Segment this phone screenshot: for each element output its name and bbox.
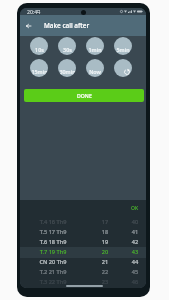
staticText: 30s: [63, 46, 72, 53]
staticText: T.3 22 Th9: [23, 278, 83, 286]
staticText: 23: [95, 278, 115, 286]
staticText: 42: [125, 238, 145, 246]
button[interactable]: T.5 17 Th9: [20, 227, 146, 237]
staticText: Make call after: [44, 21, 90, 30]
button[interactable]: T.4 16 Th9: [20, 217, 146, 227]
staticText: 15min: [31, 68, 48, 75]
button[interactable]: 1min: [86, 37, 104, 55]
staticText: 43: [125, 248, 145, 256]
staticText: 5min: [116, 46, 130, 53]
button[interactable]: T.2 21 Th9: [20, 267, 146, 277]
staticText: T.5 17 Th9: [23, 228, 83, 236]
staticText: 40: [125, 218, 145, 226]
staticText: 17: [95, 218, 115, 226]
staticText: 46: [125, 278, 145, 286]
button[interactable]: 10s: [30, 37, 48, 55]
staticText: 45: [125, 268, 145, 276]
button[interactable]: 5min: [114, 37, 132, 55]
staticText: 1min: [88, 46, 102, 53]
button[interactable]: OK: [127, 203, 143, 213]
staticText: 20:44: [27, 8, 41, 15]
staticText: T.7 19 Th9: [23, 248, 83, 256]
staticText: 22: [95, 268, 115, 276]
button[interactable]: Custom time: [114, 59, 132, 77]
staticText: T.6 18 Th9: [23, 238, 83, 246]
button[interactable]: T.6 18 Th9: [20, 237, 146, 247]
staticText: 20: [95, 248, 115, 256]
button[interactable]: CN 20 Th9: [20, 257, 146, 267]
staticText: Now: [89, 68, 101, 75]
button[interactable]: Back: [23, 20, 34, 31]
staticText: 30min: [59, 68, 76, 75]
staticText: 21: [95, 258, 115, 266]
staticText: 18: [95, 228, 115, 236]
staticText: 19: [95, 238, 115, 246]
staticText: OK: [131, 205, 139, 212]
staticText: 44: [125, 258, 145, 266]
button[interactable]: T.7 19 Th9: [20, 247, 146, 257]
staticText: 41: [125, 228, 145, 236]
button[interactable]: DONE: [24, 89, 144, 102]
staticText: T.2 21 Th9: [23, 268, 83, 276]
button[interactable]: 15min: [30, 59, 48, 77]
button[interactable]: T.3 22 Th9: [20, 277, 146, 287]
staticText: DONE: [77, 92, 92, 99]
staticText: CN 20 Th9: [23, 258, 83, 266]
button[interactable]: Now: [86, 59, 104, 77]
button[interactable]: 30min: [58, 59, 76, 77]
staticText: 10s: [35, 46, 44, 53]
staticText: T.4 16 Th9: [23, 218, 83, 226]
button[interactable]: 30s: [58, 37, 76, 55]
